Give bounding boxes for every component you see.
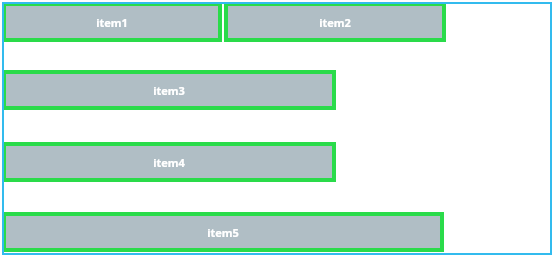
button[interactable]: item2 xyxy=(224,2,446,42)
button[interactable]: item1 xyxy=(2,2,222,42)
button[interactable]: item5 xyxy=(2,212,444,252)
staticText: item5 xyxy=(207,225,239,240)
staticText: item3 xyxy=(153,83,185,98)
staticText: item4 xyxy=(153,155,185,170)
button[interactable]: item3 xyxy=(2,70,336,110)
button[interactable]: item4 xyxy=(2,142,336,182)
staticText: item2 xyxy=(319,15,351,30)
staticText: item1 xyxy=(96,15,128,30)
